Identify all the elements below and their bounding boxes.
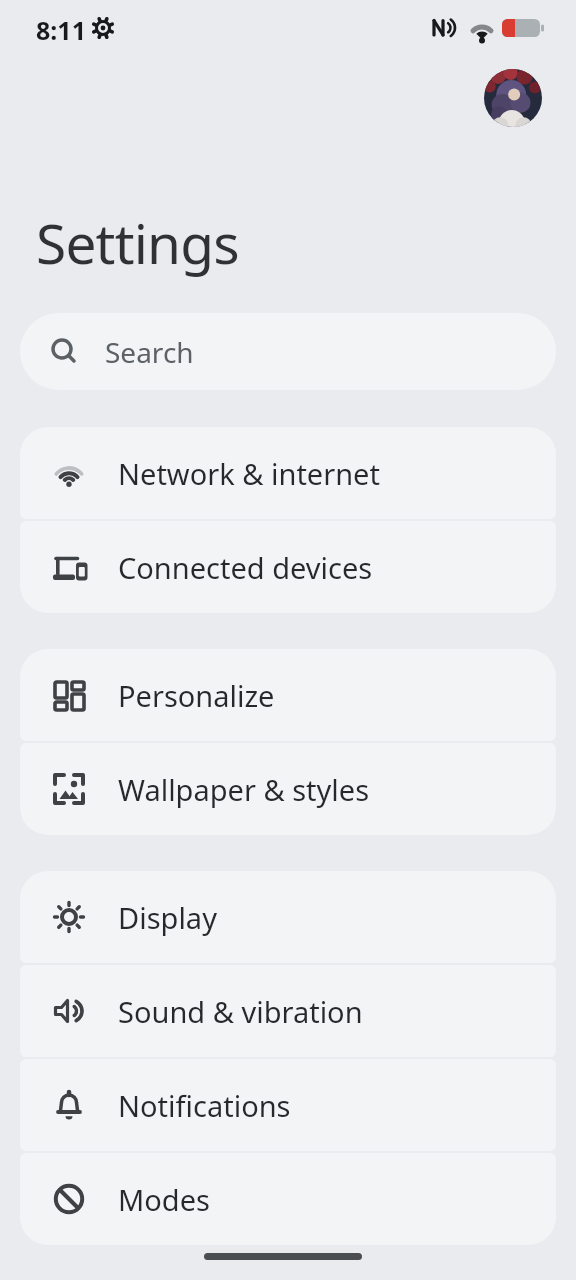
- staticText: Notifications: [118, 1086, 291, 1125]
- button[interactable]: Modes: [20, 1153, 556, 1245]
- button[interactable]: Connected devices: [20, 521, 556, 613]
- staticText: Connected devices: [118, 548, 373, 587]
- staticText: Personalize: [118, 676, 275, 715]
- staticText: Sound & vibration: [118, 992, 363, 1031]
- button[interactable]: Sound & vibration: [20, 965, 556, 1057]
- button[interactable]: Network & internet: [20, 427, 556, 519]
- staticText: Display: [118, 898, 217, 937]
- staticText: Search: [105, 333, 194, 371]
- button[interactable]: Display: [20, 871, 556, 963]
- staticText: 8:11: [36, 13, 86, 47]
- staticText: Wallpaper & styles: [118, 770, 370, 809]
- button[interactable]: [484, 69, 542, 127]
- button[interactable]: Notifications: [20, 1059, 556, 1151]
- staticText: Settings: [36, 205, 239, 280]
- button[interactable]: Wallpaper & styles: [20, 743, 556, 835]
- button[interactable]: Personalize: [20, 649, 556, 741]
- staticText: Network & internet: [118, 454, 380, 493]
- staticText: Modes: [118, 1180, 210, 1219]
- button[interactable]: Search: [20, 313, 556, 390]
